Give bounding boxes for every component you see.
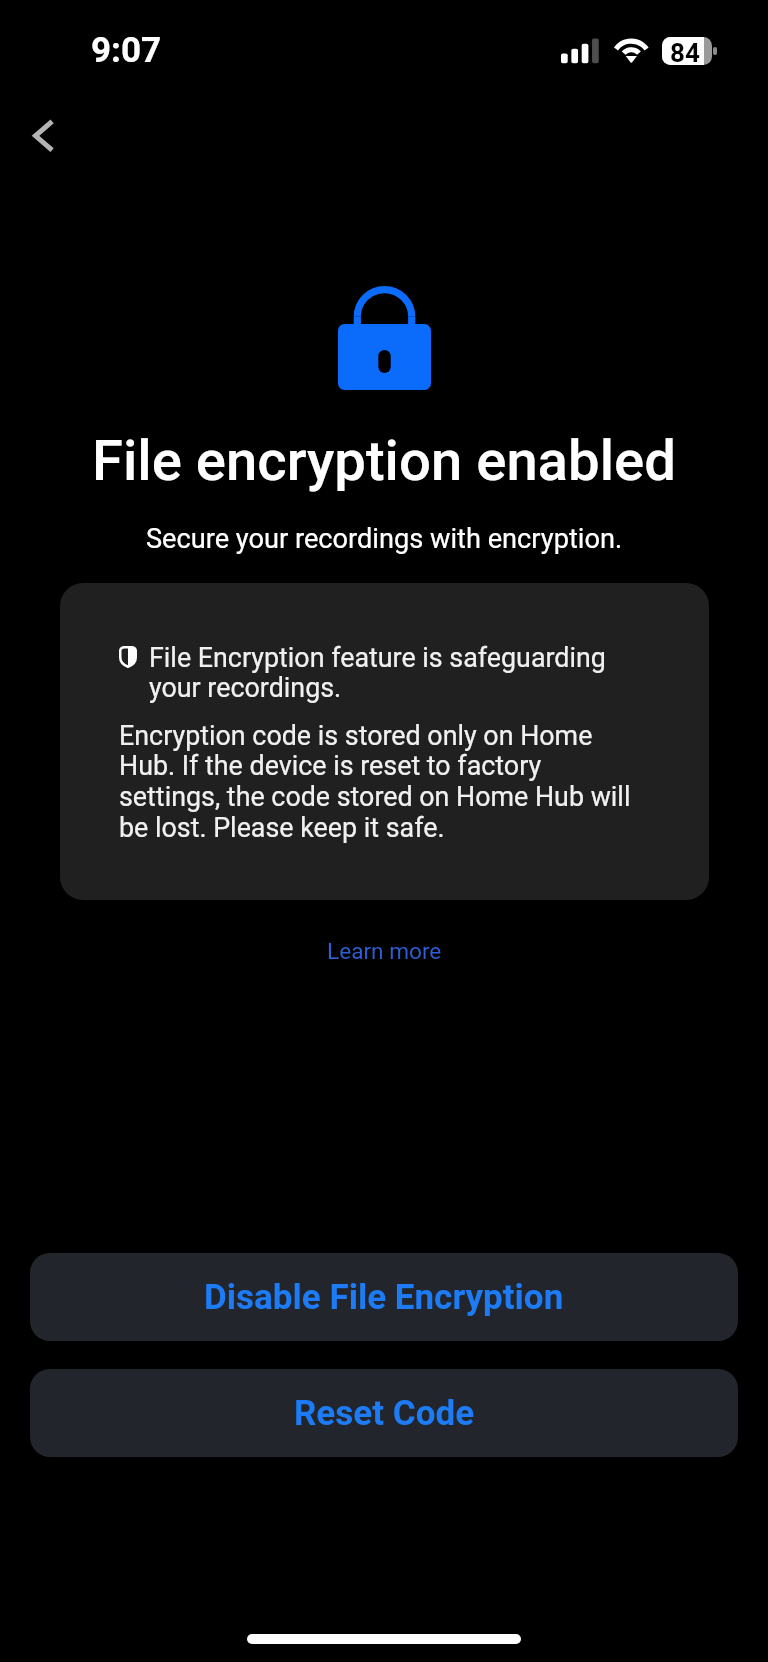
staticText: 9:07 bbox=[91, 30, 162, 71]
staticText: Encryption code is stored only on Home H… bbox=[119, 720, 639, 844]
staticText: File encryption enabled bbox=[0, 428, 768, 494]
staticText: Secure your recordings with encryption. bbox=[0, 523, 768, 555]
staticText: Reset Code bbox=[294, 1393, 475, 1434]
button[interactable]: Disable File Encryption bbox=[30, 1253, 738, 1341]
staticText: Disable File Encryption bbox=[204, 1277, 564, 1318]
staticText: 84 bbox=[670, 38, 700, 65]
button[interactable]: Reset Code bbox=[30, 1369, 738, 1457]
button[interactable]: Learn more bbox=[313, 930, 456, 972]
button[interactable]: Back bbox=[9, 98, 75, 174]
staticText: Learn more bbox=[327, 938, 442, 964]
staticText: File Encryption feature is safeguarding … bbox=[149, 642, 637, 704]
